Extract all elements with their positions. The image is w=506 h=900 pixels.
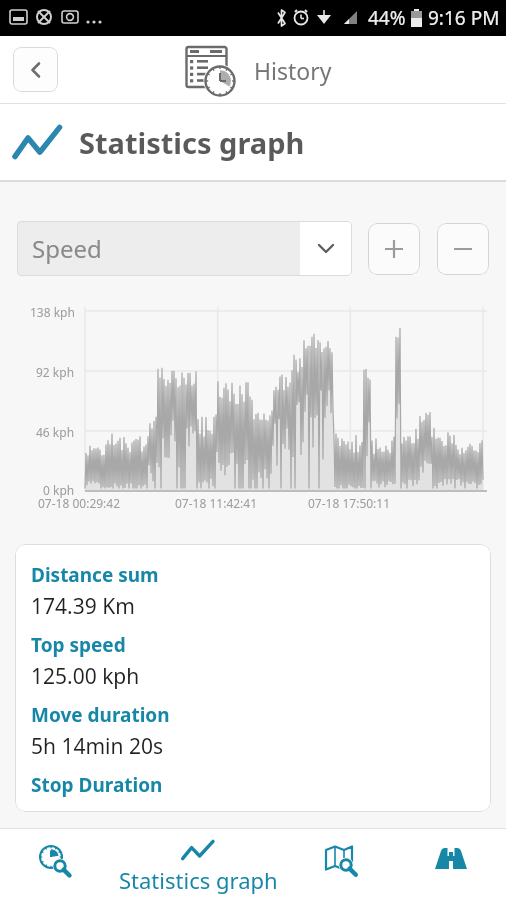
staticText: Stop Duration: [31, 772, 163, 798]
staticText: 9:16 PM: [428, 5, 500, 31]
staticText: 5h 14min 20s: [31, 732, 164, 761]
staticText: 07-18 00:29:42: [38, 495, 121, 511]
staticText: Statistics graph: [119, 865, 278, 895]
staticText: Top speed: [31, 632, 126, 658]
staticText: 0 kph: [43, 482, 75, 498]
staticText: Move duration: [31, 702, 170, 728]
staticText: History: [254, 55, 332, 86]
staticText: 125.00 kph: [31, 662, 140, 691]
button[interactable]: Speed: [17, 221, 352, 276]
staticText: Distance sum: [31, 562, 159, 588]
staticText: Statistics graph: [79, 123, 305, 162]
button[interactable]: [13, 47, 58, 92]
staticText: Speed: [32, 232, 102, 265]
staticText: 07-18 11:42:41: [175, 495, 258, 511]
button[interactable]: [0, 829, 110, 900]
button[interactable]: [437, 223, 489, 275]
button[interactable]: [368, 223, 420, 275]
staticText: 07-18 17:50:11: [308, 495, 391, 511]
staticText: 92 kph: [36, 364, 75, 380]
staticText: 174.39 Km: [31, 592, 135, 621]
staticText: 138 kph: [30, 304, 75, 320]
staticText: 46 kph: [36, 424, 75, 440]
button[interactable]: [286, 829, 396, 900]
button[interactable]: [396, 829, 506, 900]
staticText: 44%: [368, 5, 406, 31]
button[interactable]: Statistics graph: [110, 829, 286, 900]
